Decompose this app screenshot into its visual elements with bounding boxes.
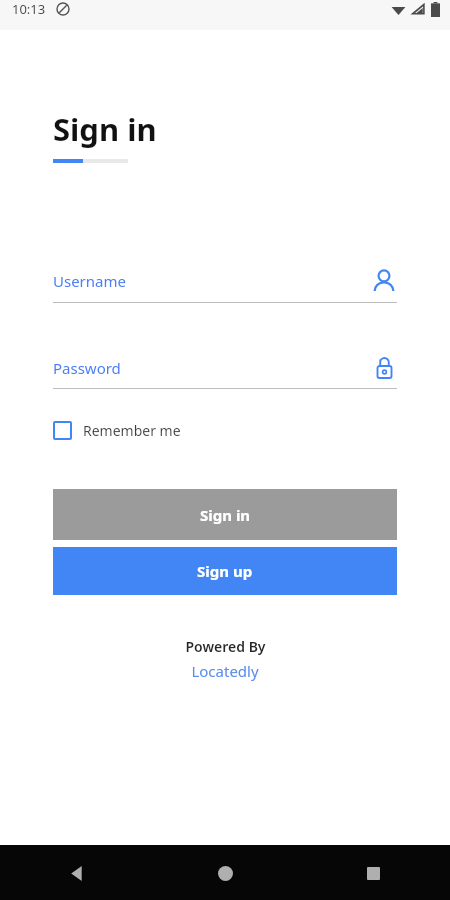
staticText: Sign in: [53, 108, 157, 150]
staticText: Sign up: [197, 561, 253, 581]
button[interactable]: Password: [53, 355, 397, 389]
button[interactable]: Username: [53, 268, 397, 303]
button[interactable]: Locatedly: [191, 661, 259, 681]
staticText: Username: [53, 271, 126, 291]
staticText: Password: [53, 358, 121, 378]
button[interactable]: Home: [208, 856, 242, 890]
staticText: Remember me: [83, 421, 181, 440]
other: Username: [371, 268, 397, 294]
other: Password: [372, 355, 397, 380]
staticText: Sign in: [200, 505, 251, 525]
button[interactable]: Sign in: [53, 489, 397, 540]
staticText: Powered By: [185, 637, 266, 656]
button[interactable]: Sign up: [53, 547, 397, 595]
staticText: 10:13: [12, 0, 46, 18]
button[interactable]: Recents: [356, 856, 390, 890]
button[interactable]: Remember me: [53, 417, 181, 444]
button[interactable]: Back: [60, 856, 94, 890]
